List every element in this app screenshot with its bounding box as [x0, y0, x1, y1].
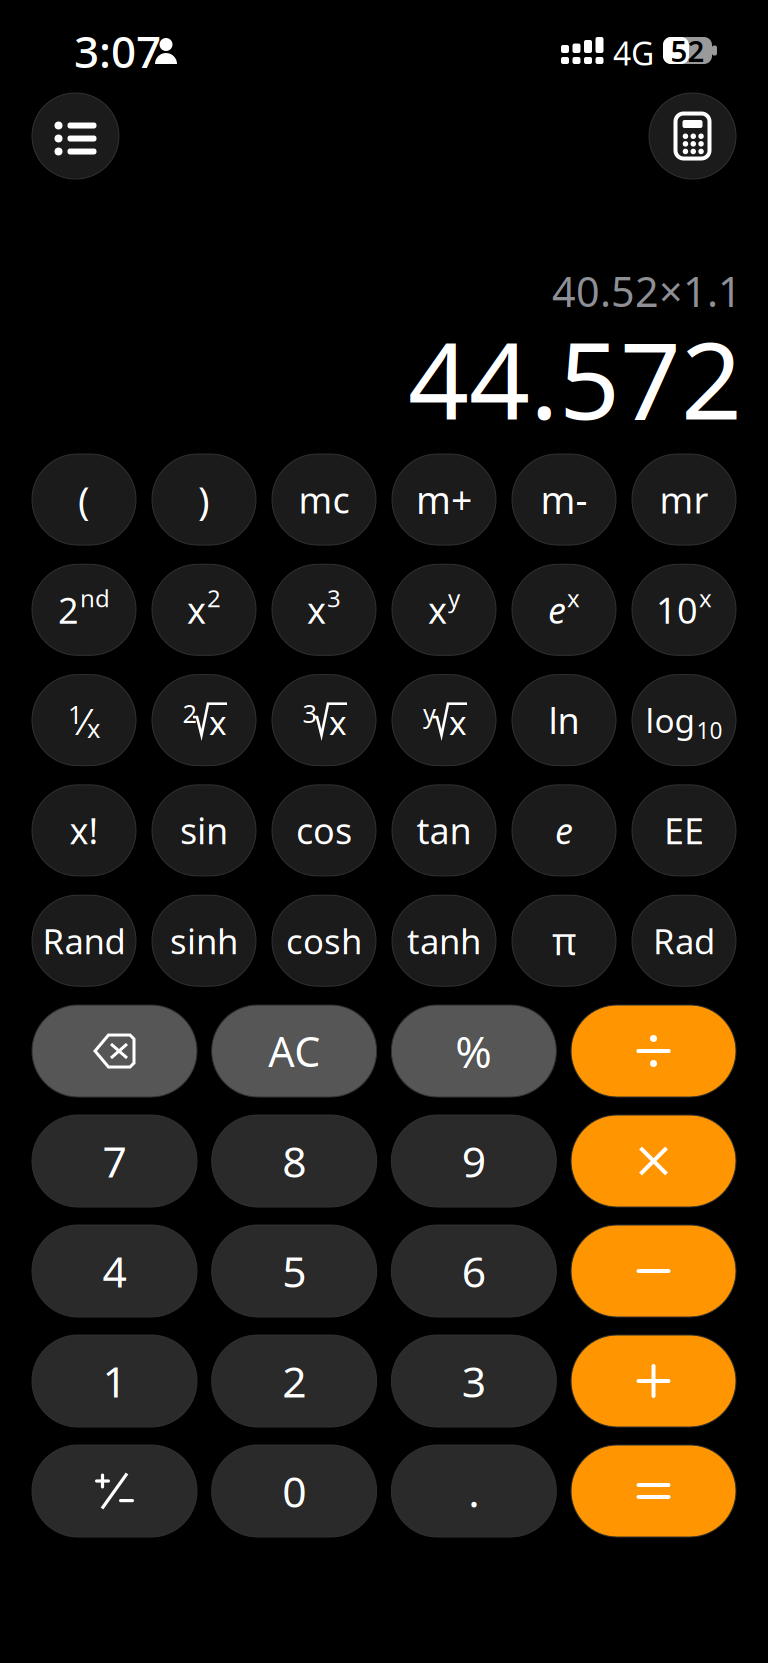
button[interactable]: cosh: [272, 895, 376, 986]
button[interactable]: Plus minus: [32, 1445, 197, 1537]
staticText: π: [552, 916, 576, 965]
button[interactable]: 9: [391, 1115, 556, 1207]
button[interactable]: History: [32, 93, 119, 179]
button[interactable]: Rand: [32, 895, 136, 986]
staticText: 4: [102, 1243, 126, 1299]
button[interactable]: Percent: [391, 1005, 556, 1097]
button[interactable]: x cubed: [272, 564, 376, 655]
staticText: 10: [696, 715, 722, 745]
button[interactable]: Divide: [571, 1005, 736, 1097]
button[interactable]: EE: [632, 785, 736, 876]
button[interactable]: 6: [391, 1225, 556, 1317]
staticText: x: [428, 586, 447, 634]
button[interactable]: square root: [152, 675, 256, 766]
button[interactable]: Plus: [571, 1335, 736, 1427]
button[interactable]: sinh: [152, 895, 256, 986]
button[interactable]: x squared: [152, 564, 256, 655]
button[interactable]: 10 to the x: [632, 564, 736, 655]
staticText: 3: [462, 1353, 486, 1409]
button[interactable]: m-: [512, 454, 616, 545]
staticText: y: [423, 696, 436, 730]
staticText: x: [449, 700, 467, 744]
button[interactable]: 8: [212, 1115, 377, 1207]
staticText: x: [87, 711, 100, 745]
staticText: e: [548, 586, 566, 634]
button[interactable]: 0: [212, 1445, 377, 1537]
staticText: 52: [670, 31, 704, 70]
staticText: 3:07: [74, 22, 161, 80]
staticText: sinh: [170, 918, 238, 964]
button[interactable]: 7: [32, 1115, 197, 1207]
button[interactable]: Rad: [632, 895, 736, 986]
staticText: 4G: [613, 32, 654, 74]
button[interactable]: tan: [392, 785, 496, 876]
staticText: cosh: [286, 918, 362, 964]
button[interactable]: Multiply: [571, 1115, 736, 1207]
staticText: nd: [80, 582, 110, 614]
button[interactable]: Minus: [571, 1225, 736, 1317]
button[interactable]: 2: [212, 1335, 377, 1427]
button[interactable]: cos: [272, 785, 376, 876]
button[interactable]: Decimal point: [391, 1445, 556, 1537]
staticText: ⁄: [82, 697, 87, 745]
staticText: 2: [282, 1353, 306, 1409]
staticText: Rand: [42, 918, 125, 964]
staticText: mr: [659, 476, 708, 523]
button[interactable]: x to the y: [392, 564, 496, 655]
staticText: .: [468, 1463, 479, 1519]
staticText: %: [455, 1022, 492, 1080]
staticText: 3: [327, 582, 341, 614]
button[interactable]: 5: [212, 1225, 377, 1317]
button[interactable]: 1: [32, 1335, 197, 1427]
staticText: 2: [182, 696, 196, 730]
staticText: AC: [268, 1024, 320, 1078]
button[interactable]: Close parenthesis: [152, 454, 256, 545]
staticText: 0: [282, 1463, 306, 1519]
button[interactable]: Equals: [571, 1445, 736, 1537]
button[interactable]: 3: [391, 1335, 556, 1427]
button[interactable]: Open parenthesis: [32, 454, 136, 545]
staticText: ): [198, 474, 210, 525]
staticText: x: [209, 700, 227, 744]
staticText: x: [187, 586, 206, 634]
staticText: 2: [58, 586, 79, 634]
button[interactable]: mc: [272, 454, 376, 545]
button[interactable]: y root: [392, 675, 496, 766]
button[interactable]: Delete: [32, 1005, 197, 1097]
button[interactable]: sin: [152, 785, 256, 876]
button[interactable]: cube root: [272, 675, 376, 766]
button[interactable]: All clear: [212, 1005, 377, 1097]
staticText: m+: [416, 475, 472, 524]
staticText: Rad: [653, 918, 715, 964]
button[interactable]: factorial: [32, 785, 136, 876]
staticText: x: [699, 582, 712, 614]
staticText: 9: [462, 1133, 486, 1189]
staticText: 1: [68, 697, 82, 731]
staticText: x: [329, 700, 347, 744]
button[interactable]: e to the x: [512, 564, 616, 655]
staticText: tanh: [407, 918, 481, 964]
staticText: 3: [302, 696, 316, 730]
staticText: 44.572: [408, 307, 742, 449]
button[interactable]: log base 10: [632, 675, 736, 766]
button[interactable]: m+: [392, 454, 496, 545]
staticText: sin: [180, 806, 228, 854]
staticText: y: [448, 582, 460, 614]
button[interactable]: one over x: [32, 675, 136, 766]
button[interactable]: Calculator: [649, 93, 736, 179]
staticText: log: [645, 698, 695, 742]
button[interactable]: mr: [632, 454, 736, 545]
button[interactable]: pi: [512, 895, 616, 986]
staticText: 6: [462, 1243, 486, 1299]
staticText: tan: [416, 806, 471, 854]
button[interactable]: ln: [512, 675, 616, 766]
button[interactable]: e: [512, 785, 616, 876]
staticText: 2: [207, 582, 221, 614]
button[interactable]: 4: [32, 1225, 197, 1317]
button[interactable]: tanh: [392, 895, 496, 986]
staticText: 8: [282, 1133, 306, 1189]
staticText: mc: [298, 476, 349, 523]
staticText: x: [307, 586, 326, 634]
button[interactable]: 2nd: [32, 564, 136, 655]
staticText: e: [555, 806, 573, 854]
